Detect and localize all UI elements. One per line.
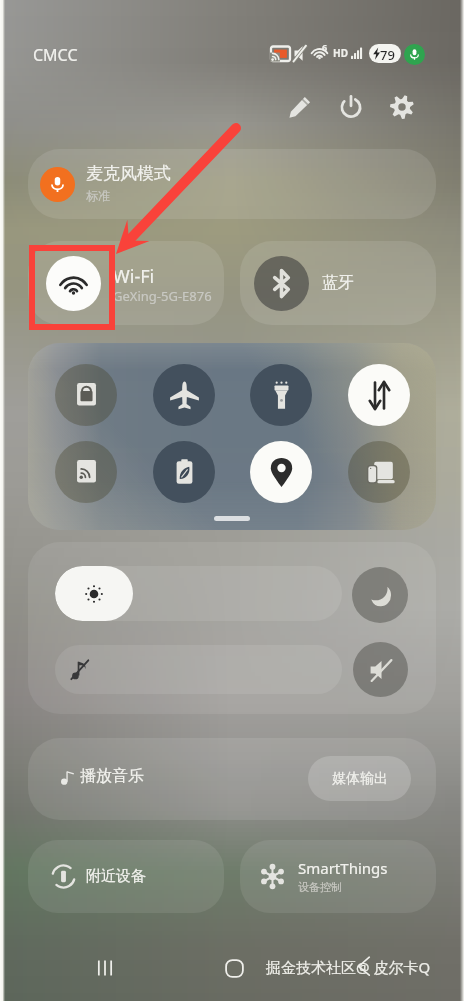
button[interactable]: Volume bbox=[55, 645, 342, 694]
staticText: SmartThings bbox=[298, 858, 388, 878]
button[interactable]: Mobile hotspot bbox=[55, 441, 117, 503]
button[interactable]: 蓝牙 bbox=[240, 241, 436, 325]
button[interactable]: Settings bbox=[383, 88, 421, 126]
button[interactable]: Airplane mode bbox=[153, 364, 215, 426]
button[interactable]: 播放音乐 bbox=[28, 738, 436, 820]
staticText: 附近设备 bbox=[86, 867, 146, 886]
button[interactable]: Mute bbox=[353, 642, 408, 697]
staticText: 麦克风模式 bbox=[86, 163, 171, 184]
button[interactable]: Home bbox=[212, 946, 256, 990]
button[interactable]: Power saving bbox=[153, 441, 215, 503]
button[interactable]: Wi-Fi bbox=[28, 241, 224, 325]
button[interactable]: 麦克风模式 bbox=[28, 149, 436, 219]
staticText: HD bbox=[333, 46, 348, 60]
staticText: 蓝牙 bbox=[322, 273, 354, 293]
staticText: 79 bbox=[380, 46, 395, 64]
staticText: GeXing-5G-E876 bbox=[113, 287, 212, 305]
button[interactable]: 媒体输出 bbox=[308, 756, 411, 801]
button[interactable]: Microphone active bbox=[404, 44, 425, 65]
staticText: Wi-Fi bbox=[113, 264, 155, 289]
button[interactable]: Edit bbox=[281, 88, 319, 126]
staticText: 掘金技术社区@ 皮尔卡Q bbox=[266, 957, 431, 977]
button[interactable]: Recent apps bbox=[83, 946, 127, 990]
button[interactable]: Flashlight bbox=[250, 364, 312, 426]
staticText: CMCC bbox=[33, 44, 78, 66]
button[interactable]: Power off bbox=[332, 88, 370, 126]
button[interactable]: Location bbox=[250, 441, 312, 503]
staticText: 标准 bbox=[86, 188, 110, 203]
button[interactable]: Brightness bbox=[55, 566, 342, 621]
staticText: 媒体输出 bbox=[332, 770, 388, 788]
button[interactable]: Mobile data bbox=[348, 364, 410, 426]
button[interactable]: Back bbox=[344, 946, 384, 986]
button[interactable]: Dark mode bbox=[352, 567, 408, 623]
staticText: 设备控制 bbox=[298, 880, 342, 894]
staticText: 播放音乐 bbox=[80, 766, 144, 786]
button[interactable]: SmartThings bbox=[240, 840, 436, 913]
button[interactable]: Lock network bbox=[55, 364, 117, 426]
button[interactable]: 附近设备 bbox=[28, 840, 224, 913]
button[interactable]: Smart View bbox=[348, 441, 410, 503]
staticText: 6 bbox=[322, 41, 328, 53]
